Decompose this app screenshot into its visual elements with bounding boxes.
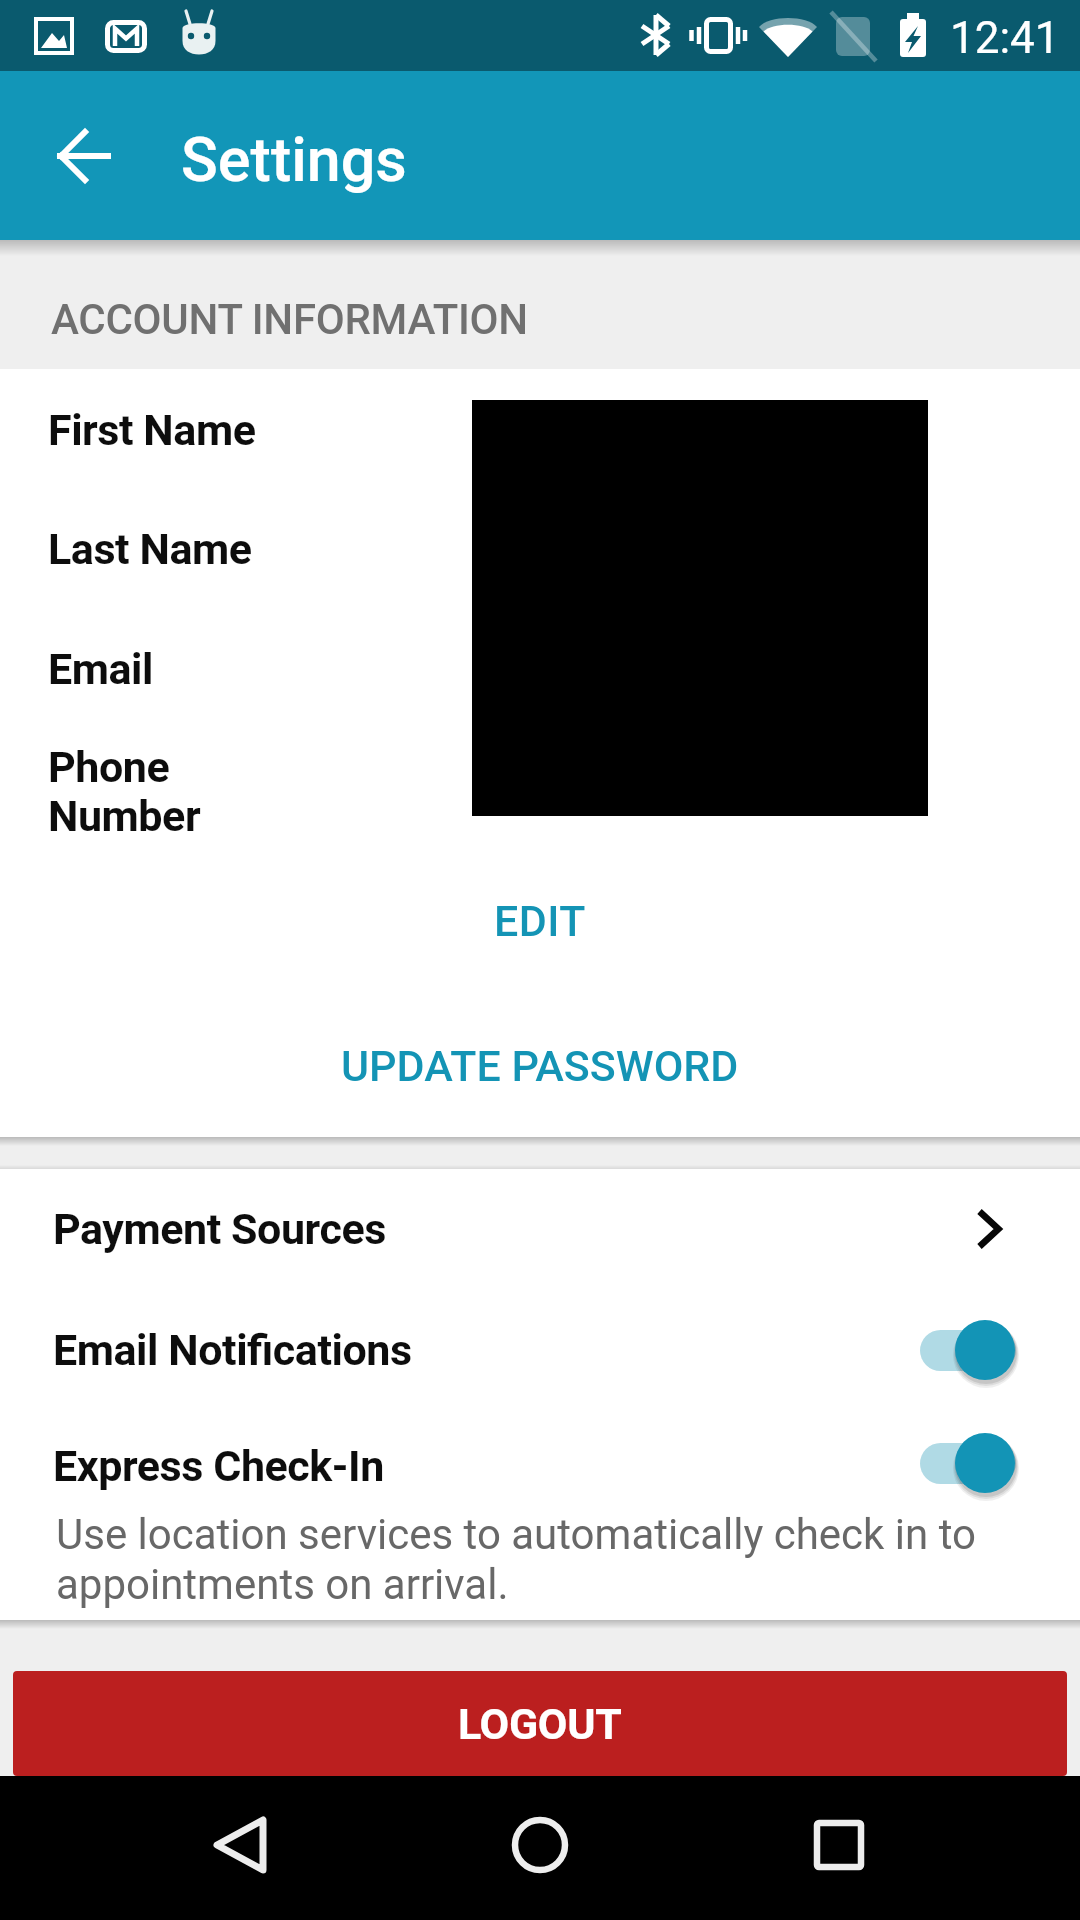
staticText: ACCOUNT INFORMATION [51,295,528,344]
button[interactable]: Express check-in on [920,1430,1018,1496]
button[interactable]: Open payment sources [941,1181,1037,1277]
button[interactable]: Back [36,107,132,203]
button[interactable]: Email Notifications [0,1289,1080,1411]
staticText: EDIT [494,896,586,946]
button[interactable]: UPDATE PASSWORD [0,1018,1080,1114]
button[interactable]: Express Check-In [0,1411,1080,1620]
staticText: Last Name [48,524,252,574]
staticText: Express Check-In [53,1441,384,1491]
staticText: Payment Sources [53,1204,386,1254]
staticText: First Name [48,405,256,455]
staticText: 12:41 [950,12,1060,64]
staticText: Settings [181,124,407,195]
staticText: Use location services to automatically c… [56,1510,1040,1609]
staticText: UPDATE PASSWORD [341,1041,739,1091]
button[interactable]: Email notifications on [920,1317,1018,1383]
button[interactable]: Payment Sources [0,1169,1080,1289]
staticText: LOGOUT [458,1699,622,1749]
staticText: Email [48,644,154,694]
staticText: Phone Number [48,742,201,841]
button[interactable]: LOGOUT [13,1671,1067,1776]
staticText: Email Notifications [53,1325,412,1375]
button[interactable]: EDIT [0,873,1080,969]
